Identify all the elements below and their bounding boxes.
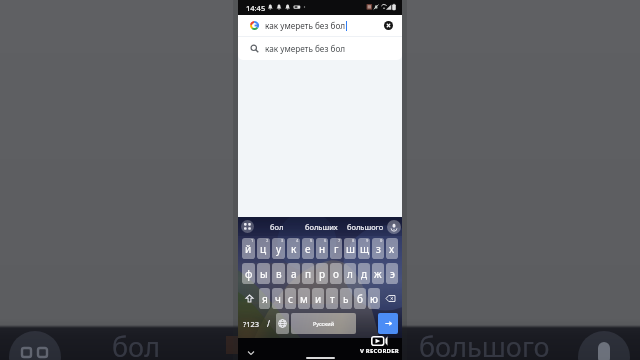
button[interactable]: бол	[266, 219, 288, 235]
staticText: 3	[281, 238, 284, 243]
button[interactable]: и	[312, 288, 324, 309]
button[interactable]: в	[272, 263, 285, 284]
staticText: м	[300, 292, 308, 306]
button[interactable]: ы	[257, 263, 270, 284]
staticText: с	[288, 292, 293, 306]
button[interactable]: л	[344, 263, 356, 284]
button[interactable]: ?123	[241, 311, 261, 336]
staticText: как умереть без бол	[265, 20, 346, 31]
button[interactable]: н	[316, 238, 328, 259]
button[interactable]: е	[302, 238, 314, 259]
staticText: ю	[370, 292, 378, 306]
staticText: /	[267, 318, 270, 329]
staticText: з	[376, 242, 381, 256]
staticText: 1	[251, 238, 254, 243]
button[interactable]: Voice input	[387, 220, 401, 234]
staticText: э	[390, 267, 395, 281]
staticText: к	[291, 242, 297, 256]
button[interactable]: ч	[272, 288, 283, 309]
staticText: ф	[245, 267, 253, 281]
button[interactable]: г	[330, 238, 342, 259]
staticText: щ	[360, 242, 369, 256]
staticText: ы	[260, 267, 268, 281]
staticText: а	[291, 267, 297, 281]
button[interactable]: у	[272, 238, 285, 259]
button[interactable]: Switch language	[276, 313, 289, 334]
button[interactable]: ф	[242, 263, 255, 284]
staticText: как умереть без бол	[265, 43, 346, 54]
staticText: большого	[419, 328, 550, 360]
staticText: ь	[343, 292, 349, 306]
button[interactable]: ь	[340, 288, 352, 309]
button[interactable]: Search	[378, 313, 398, 334]
staticText: й	[245, 242, 252, 256]
button[interactable]: з	[372, 238, 384, 259]
staticText: л	[347, 267, 353, 281]
staticText: больших	[305, 222, 338, 232]
staticText: 4	[296, 238, 299, 243]
staticText: 5	[310, 238, 313, 243]
button[interactable]: Русский	[291, 313, 356, 334]
staticText: бол	[112, 328, 161, 360]
button[interactable]: а	[287, 263, 300, 284]
button[interactable]: м	[298, 288, 310, 309]
staticText: ?123	[243, 319, 260, 329]
button[interactable]: Backspace	[381, 286, 399, 311]
staticText: д	[361, 267, 368, 281]
staticText: 8	[352, 238, 355, 243]
staticText: о	[333, 267, 339, 281]
staticText: п	[305, 267, 312, 281]
staticText: г	[334, 242, 339, 256]
button[interactable]: ц	[257, 238, 270, 259]
staticText: 0	[380, 238, 383, 243]
button[interactable]: как умереть без бол	[238, 36, 402, 60]
staticText: я	[262, 292, 268, 306]
button[interactable]: о	[330, 263, 342, 284]
button[interactable]: с	[285, 288, 296, 309]
staticText: Русский	[313, 320, 335, 327]
staticText: е	[305, 242, 311, 256]
staticText: ц	[260, 242, 267, 256]
button[interactable]: к	[287, 238, 300, 259]
staticText: у	[276, 242, 282, 256]
button[interactable]: ш	[344, 238, 356, 259]
button[interactable]: э	[386, 263, 398, 284]
button[interactable]: Keyboard menu	[241, 220, 254, 233]
staticText: и	[315, 292, 322, 306]
staticText: ш	[346, 242, 355, 256]
staticText: в	[276, 267, 282, 281]
button[interactable]: как умереть без бол	[238, 15, 402, 36]
staticText: ж	[374, 267, 382, 281]
button[interactable]: Clear search	[384, 21, 393, 30]
staticText: 2	[266, 238, 269, 243]
staticText: б	[357, 292, 363, 306]
button[interactable]: я	[259, 288, 270, 309]
button[interactable]: р	[316, 263, 328, 284]
button[interactable]: /	[261, 311, 275, 336]
staticText: 14:45	[246, 3, 266, 13]
button[interactable]: больших	[301, 219, 342, 235]
staticText: х	[389, 242, 395, 256]
button[interactable]: й	[242, 238, 255, 259]
button[interactable]: д	[358, 263, 370, 284]
button[interactable]: Hide keyboard	[246, 348, 255, 357]
staticText: 9	[366, 238, 369, 243]
staticText: 7	[338, 238, 341, 243]
staticText: 6	[324, 238, 327, 243]
button[interactable]: т	[326, 288, 338, 309]
button[interactable]: б	[354, 288, 366, 309]
staticText: V RECORDER	[360, 347, 399, 355]
button[interactable]: п	[302, 263, 314, 284]
staticText: большого	[347, 222, 384, 232]
staticText: ч	[275, 292, 281, 306]
staticText: н	[319, 242, 326, 256]
staticText: бол	[270, 222, 284, 232]
button[interactable]: Shift	[241, 286, 258, 311]
staticText: т	[330, 292, 335, 306]
button[interactable]: большого	[343, 219, 388, 235]
staticText: р	[319, 267, 326, 281]
button[interactable]: х	[386, 238, 398, 259]
button[interactable]: щ	[358, 238, 370, 259]
button[interactable]: ж	[372, 263, 384, 284]
button[interactable]: ю	[368, 288, 380, 309]
